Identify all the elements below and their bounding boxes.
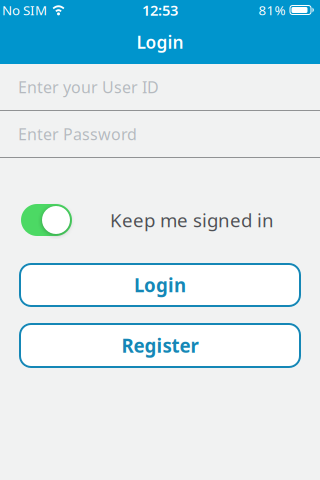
staticText: Login xyxy=(134,273,186,297)
staticText: Enter your User ID xyxy=(18,76,159,98)
button[interactable]: Login xyxy=(19,263,301,307)
staticText: 81% xyxy=(258,1,285,19)
staticText: Register xyxy=(121,333,198,358)
button[interactable]: Keep me signed in xyxy=(21,204,72,236)
staticText: 12:53 xyxy=(142,0,178,20)
staticText: Keep me signed in xyxy=(110,208,274,232)
staticText: Login xyxy=(136,30,183,53)
staticText: Enter your User ID xyxy=(20,76,161,98)
button[interactable]: Register xyxy=(19,323,301,368)
textField[interactable]: Enter your User ID xyxy=(20,76,320,98)
staticText: Enter Password xyxy=(18,123,137,145)
staticText: Enter Password xyxy=(20,123,139,145)
staticText: No SIM xyxy=(2,1,47,19)
textField[interactable]: Enter Password xyxy=(20,123,320,145)
